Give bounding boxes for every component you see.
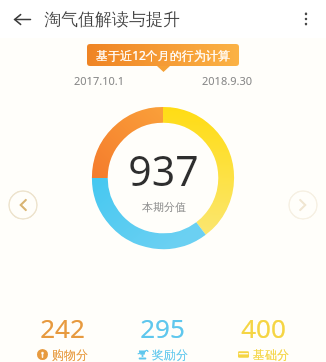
staticText: 淘气值解读与提升 (44, 9, 180, 30)
staticText: 2018.9.30 (202, 73, 252, 88)
button[interactable]: More options (291, 4, 321, 34)
staticText: 937 (128, 142, 199, 198)
staticText: 奖励分 (152, 347, 188, 362)
staticText: 400 (241, 310, 286, 345)
staticText: 295 (140, 310, 185, 345)
button[interactable]: 242 (12, 308, 112, 362)
staticText: 242 (40, 310, 85, 345)
staticText: 本期分值 (142, 200, 186, 214)
staticText: 购物分 (52, 347, 88, 362)
staticText: 2017.10.1 (74, 73, 124, 88)
button[interactable]: Next period (288, 190, 318, 220)
button[interactable]: 400 (213, 308, 314, 362)
button[interactable]: Back (6, 3, 38, 35)
staticText: 基础分 (253, 347, 289, 362)
button[interactable]: 295 (112, 308, 213, 362)
staticText: 基于近12个月的行为计算 (96, 47, 230, 63)
button[interactable]: Previous period (8, 190, 38, 220)
